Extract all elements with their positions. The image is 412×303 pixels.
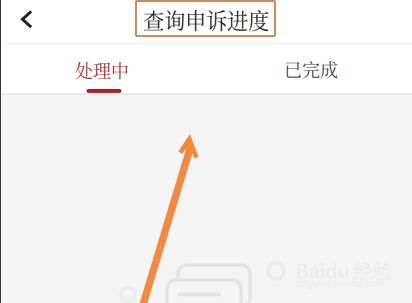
button[interactable]: 已完成 [206,44,412,93]
staticText: 已完成 [284,56,338,82]
staticText: Baidu 经验 [295,256,391,284]
staticText: 处理中 [75,57,129,83]
button[interactable]: Back [0,0,56,42]
staticText: 查询申诉进度 [143,4,269,35]
button[interactable]: 处理中 [0,44,206,93]
